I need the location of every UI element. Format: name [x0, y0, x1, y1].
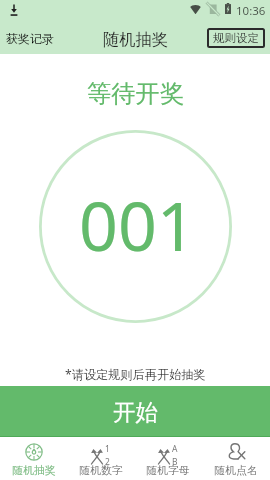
other: Download	[9, 4, 19, 16]
button[interactable]: 规则设定	[207, 28, 265, 48]
staticText: A	[172, 443, 178, 455]
button[interactable]: A	[134, 437, 202, 480]
staticText: 随机抽奖	[103, 29, 168, 49]
staticText: 随机字母	[146, 464, 190, 478]
staticText: 随机抽奖	[12, 464, 56, 478]
staticText: 001	[79, 178, 196, 271]
staticText: 规则设定	[213, 31, 259, 45]
button[interactable]: 获奖记录	[0, 27, 60, 50]
staticText: 随机数字	[79, 464, 123, 478]
staticText: 等待开奖	[87, 79, 185, 110]
staticText: 1	[105, 443, 110, 455]
staticText: B	[172, 456, 178, 468]
button[interactable]: 开始	[0, 386, 270, 437]
staticText: 获奖记录	[6, 31, 54, 46]
staticText: 2	[105, 456, 110, 468]
staticText: *请设定规则后再开始抽奖	[65, 366, 206, 383]
staticText: 10:36	[236, 3, 266, 19]
button[interactable]: 随机抽奖	[0, 437, 67, 480]
staticText: 随机点名	[214, 464, 258, 478]
button[interactable]: 随机点名	[202, 437, 270, 480]
button[interactable]: 1	[67, 437, 134, 480]
staticText: 开始	[113, 398, 158, 426]
